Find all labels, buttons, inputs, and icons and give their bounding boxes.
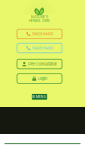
staticText: HERBAL CARE	[29, 19, 50, 23]
button[interactable]: Free Consultation	[17, 59, 62, 69]
staticText: 09428 84430	[32, 32, 53, 36]
staticText: NATURE'S	[31, 15, 48, 19]
button[interactable]: Login	[17, 74, 62, 83]
button[interactable]: 09428 84430	[17, 29, 62, 39]
staticText: MENU	[36, 95, 47, 99]
staticText: Login	[38, 76, 47, 81]
staticText: Free Consultation	[28, 62, 57, 66]
button[interactable]: MENU	[32, 94, 47, 100]
button[interactable]: 09428 84430	[17, 43, 62, 53]
staticText: 09428 84430	[32, 46, 53, 50]
